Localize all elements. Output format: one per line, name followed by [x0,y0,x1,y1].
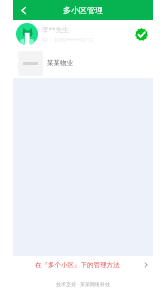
button[interactable]: 某某物业 [13,48,153,78]
staticText: 在『多个小区』下的管理方法 [35,261,120,269]
staticText: ID：1089*****8712 [42,36,94,44]
staticText: 多小区管理 [63,5,103,15]
button[interactable]: 李**先生 [13,20,153,48]
staticText: 李**先生 [42,25,69,34]
staticText: 技术支持 · 某某网络科技 [56,281,110,288]
staticText: 某某物业 [47,59,73,67]
button[interactable]: 在『多个小区』下的管理方法 [13,256,153,273]
button[interactable]: Back [13,0,33,20]
